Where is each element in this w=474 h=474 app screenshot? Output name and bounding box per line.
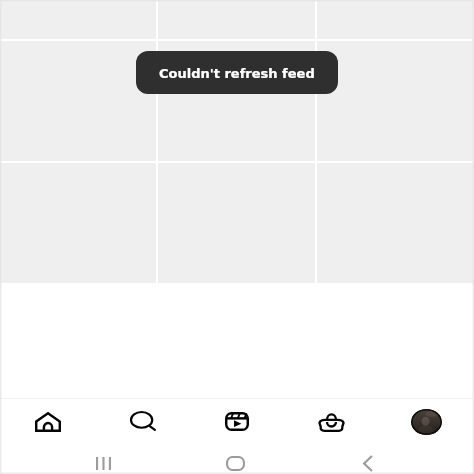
button[interactable]: Profile [379, 399, 474, 444]
button[interactable]: Shop [284, 399, 379, 444]
button[interactable]: Couldn't refresh feed [136, 51, 338, 94]
button[interactable]: Back [348, 453, 388, 474]
button[interactable]: Search [94, 399, 189, 444]
button[interactable]: Reels [189, 399, 284, 444]
button[interactable]: Home [0, 399, 94, 444]
staticText: Couldn't refresh feed [159, 66, 315, 81]
button[interactable]: Recent apps [83, 453, 123, 474]
button[interactable]: Home [215, 453, 255, 474]
